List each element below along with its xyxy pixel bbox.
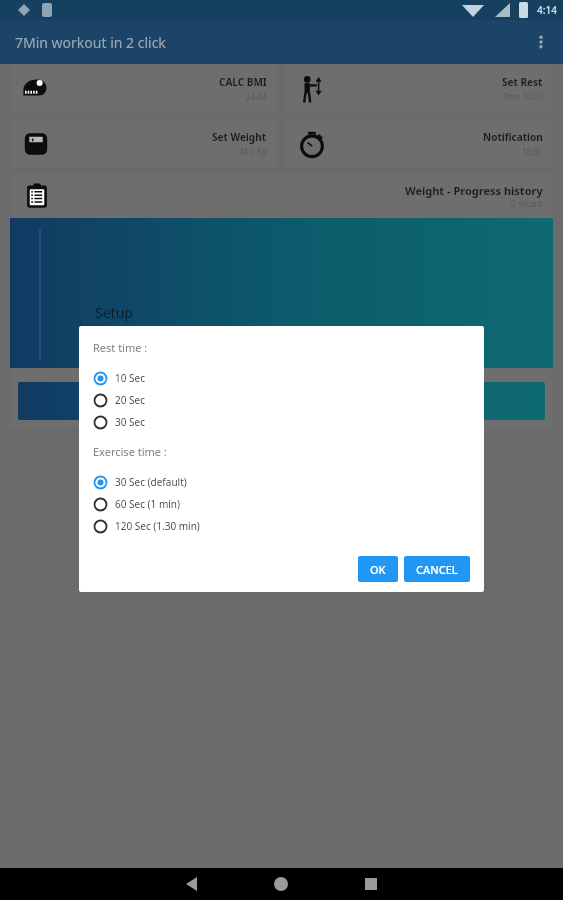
staticText: CANCEL <box>416 562 458 577</box>
staticText: Weight - Progress history <box>405 183 543 198</box>
button[interactable]: 20 Sec <box>93 389 470 411</box>
staticText: 74.0 Kg <box>239 146 267 157</box>
staticText: Set Weight <box>212 130 267 144</box>
staticText: CALC BMI <box>219 75 267 89</box>
staticText: 60 Sec (1 min) <box>115 497 180 511</box>
staticText: 20 Sec <box>115 393 145 407</box>
button[interactable]: CALC BMI <box>10 64 277 113</box>
button[interactable] <box>18 382 545 420</box>
staticText: Rest time : <box>93 340 148 355</box>
staticText: OK <box>370 562 386 577</box>
button[interactable]: Set Weight <box>10 119 277 168</box>
button[interactable]: 30 Sec (default) <box>93 471 470 493</box>
staticText: 24.44 <box>246 91 267 102</box>
button[interactable]: Set Rest <box>286 64 553 113</box>
staticText: Set Rest <box>502 75 543 89</box>
button[interactable]: More options <box>519 20 563 64</box>
staticText: Notification <box>483 130 543 144</box>
staticText: 18:00 <box>522 146 543 157</box>
button[interactable]: 60 Sec (1 min) <box>93 493 470 515</box>
staticText: map <box>526 334 539 342</box>
button[interactable]: Weight - Progress history <box>10 174 553 428</box>
button[interactable]: Notification <box>286 119 553 168</box>
staticText: 30 Sec <box>115 415 145 429</box>
staticText: 30 Sec (default) <box>115 475 187 489</box>
staticText: Exercise time : <box>93 444 167 459</box>
staticText: 7Min workout in 2 click <box>15 33 166 52</box>
staticText: 0 record <box>511 198 543 209</box>
button[interactable]: 120 Sec (1.30 min) <box>93 515 470 537</box>
staticText: 120 Sec (1.30 min) <box>115 519 200 533</box>
staticText: 10 Sec <box>115 371 145 385</box>
staticText: Rest 10:00 <box>504 91 543 102</box>
button[interactable]: 10 Sec <box>93 367 470 389</box>
button[interactable]: CANCEL <box>404 556 470 582</box>
button[interactable]: 30 Sec <box>93 411 470 433</box>
staticText: Setup <box>95 303 133 322</box>
staticText: 4:14 <box>537 3 557 17</box>
button[interactable]: OK <box>358 556 398 582</box>
